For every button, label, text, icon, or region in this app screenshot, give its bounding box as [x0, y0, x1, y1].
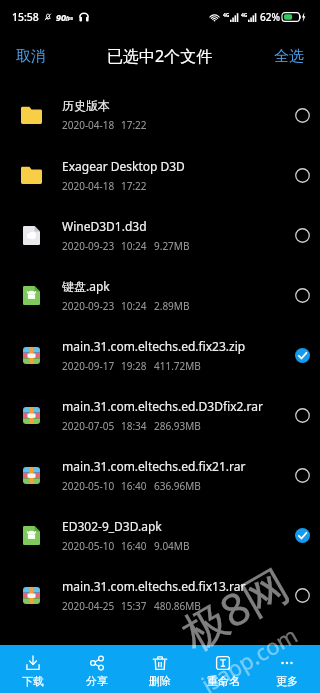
button[interactable]: Exagear Desktop D3D: [0, 145, 320, 205]
staticText: 17:22: [121, 118, 147, 132]
staticText: 9.04MB: [154, 539, 190, 553]
button[interactable]: Selected: [286, 505, 318, 565]
staticText: 17:22: [121, 179, 147, 193]
staticText: 15:37: [121, 599, 147, 613]
staticText: 删除: [149, 674, 171, 687]
staticText: 分享: [86, 674, 108, 687]
staticText: fps: [66, 15, 74, 22]
button[interactable]: main.31.com.eltechs.ed.fix21.rar: [0, 445, 320, 505]
staticText: 19:28: [121, 359, 147, 373]
staticText: 16:40: [121, 539, 147, 553]
staticText: 10:24: [121, 299, 147, 313]
button[interactable]: 删除: [130, 645, 190, 693]
staticText: main.31.com.eltechs.ed.fix21.rar: [62, 458, 246, 474]
staticText: 2020-04-18: [62, 118, 115, 132]
button[interactable]: Select: [286, 445, 318, 505]
staticText: main.31.com.eltechs.ed.fix13.rar: [62, 578, 246, 594]
staticText: WineD3D1.d3d: [62, 218, 147, 234]
staticText: 9.27MB: [154, 239, 190, 253]
staticText: 2020-05-10: [62, 539, 115, 553]
button[interactable]: 全选: [258, 43, 320, 70]
staticText: 更多: [276, 674, 298, 687]
button[interactable]: 历史版本: [0, 85, 320, 145]
staticText: 636.96MB: [154, 479, 201, 493]
staticText: 键盘.apk: [62, 278, 110, 294]
staticText: 2020-04-25: [62, 599, 115, 613]
staticText: 2020-09-23: [62, 239, 115, 253]
button[interactable]: Select: [286, 385, 318, 445]
button[interactable]: ED302-9_D3D.apk: [0, 505, 320, 565]
staticText: 下载: [22, 674, 44, 687]
staticText: 历史版本: [62, 98, 110, 113]
staticText: main.31.com.eltechs.ed.fix23.zip: [62, 338, 246, 354]
button[interactable]: Select: [286, 565, 318, 625]
button[interactable]: Selected: [286, 325, 318, 385]
button[interactable]: 下载: [3, 645, 63, 693]
staticText: 全选: [274, 47, 304, 66]
staticText: 15:58: [12, 10, 39, 24]
button[interactable]: main.31.com.eltechs.ed.fix23.zip: [0, 325, 320, 385]
staticText: 286.93MB: [154, 419, 201, 433]
staticText: 16:40: [121, 479, 147, 493]
button[interactable]: 键盘.apk: [0, 265, 320, 325]
staticText: 已选中2个文件: [107, 45, 213, 67]
staticText: 4G: [223, 12, 230, 19]
button[interactable]: Select: [286, 205, 318, 265]
button[interactable]: 重命名: [193, 645, 253, 693]
staticText: 10:24: [121, 239, 147, 253]
staticText: 2020-04-18: [62, 179, 115, 193]
staticText: 480.86MB: [154, 599, 201, 613]
staticText: 极8网: [171, 553, 299, 662]
staticText: 重命名: [207, 674, 240, 687]
staticText: 411.72MB: [154, 359, 201, 373]
staticText: 2020-09-23: [62, 299, 115, 313]
staticText: jsapp.com: [196, 619, 302, 693]
staticText: 4G: [241, 12, 248, 19]
staticText: 18:34: [121, 419, 147, 433]
button[interactable]: main.31.com.eltechs.ed.D3Dfix2.rar: [0, 385, 320, 445]
staticText: 2020-05-10: [62, 479, 115, 493]
staticText: Exagear Desktop D3D: [62, 158, 185, 174]
button[interactable]: Select: [286, 85, 318, 145]
staticText: main.31.com.eltechs.ed.D3Dfix2.rar: [62, 398, 263, 414]
button[interactable]: 分享: [67, 645, 127, 693]
button[interactable]: Select: [286, 265, 318, 325]
staticText: ED302-9_D3D.apk: [62, 518, 162, 534]
staticText: 取消: [16, 47, 46, 66]
button[interactable]: WineD3D1.d3d: [0, 205, 320, 265]
button[interactable]: Select: [286, 145, 318, 205]
staticText: 90: [56, 11, 66, 23]
staticText: 62%: [260, 10, 280, 24]
button[interactable]: 更多: [257, 645, 317, 693]
button[interactable]: main.31.com.eltechs.ed.fix13.rar: [0, 565, 320, 625]
staticText: 2020-09-17: [62, 359, 115, 373]
staticText: 2020-07-05: [62, 419, 115, 433]
button[interactable]: 取消: [0, 43, 62, 70]
staticText: 2.89MB: [154, 299, 190, 313]
